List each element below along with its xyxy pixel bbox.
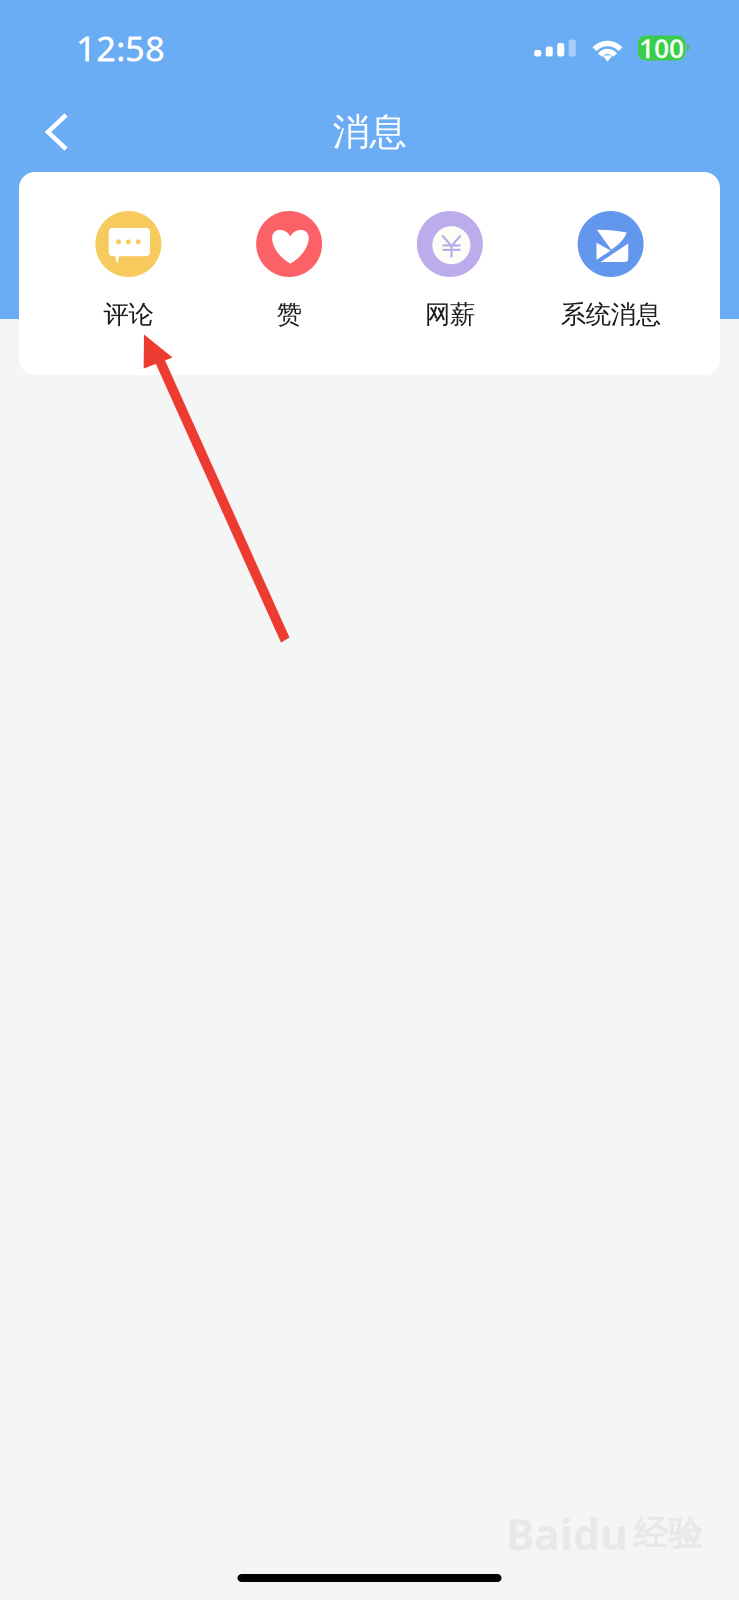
staticText: 经验	[633, 1512, 703, 1555]
staticText: 评论	[103, 299, 153, 330]
staticText: 100	[639, 30, 684, 66]
button[interactable]: 网薪	[369, 172, 530, 375]
button[interactable]: 系统消息	[530, 172, 691, 375]
button[interactable]: 评论	[48, 172, 209, 375]
staticText: 赞	[277, 299, 302, 330]
button[interactable]: 赞	[209, 172, 370, 375]
staticText: 消息	[332, 109, 406, 155]
staticText: 12:58	[76, 25, 165, 71]
staticText: 网薪	[425, 299, 475, 330]
staticText: 系统消息	[561, 299, 661, 330]
button[interactable]: Back	[18, 96, 96, 168]
staticText: Baidu	[506, 1505, 628, 1562]
